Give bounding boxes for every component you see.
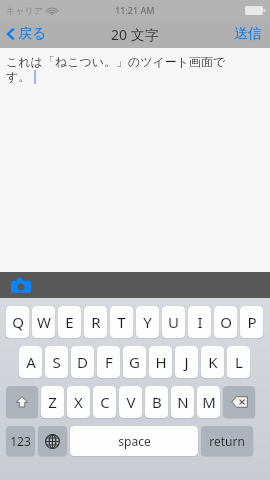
- button[interactable]: P: [240, 306, 263, 338]
- staticText: これは「ねこつい。」のツイート画面で: [6, 54, 226, 69]
- staticText: Y: [143, 312, 152, 332]
- button[interactable]: Shift: [6, 386, 38, 418]
- button[interactable]: F: [97, 346, 120, 378]
- button[interactable]: B: [145, 386, 168, 418]
- button[interactable]: 戻る: [0, 20, 55, 48]
- staticText: A: [26, 352, 36, 372]
- staticText: 送信: [234, 25, 262, 43]
- button[interactable]: R: [84, 306, 107, 338]
- button[interactable]: space: [70, 426, 198, 456]
- staticText: K: [208, 352, 218, 372]
- button[interactable]: M: [197, 386, 220, 418]
- button[interactable]: O: [214, 306, 237, 338]
- staticText: R: [91, 312, 101, 332]
- button[interactable]: L: [227, 346, 250, 378]
- staticText: X: [74, 392, 83, 412]
- staticText: S: [52, 352, 61, 372]
- button[interactable]: Camera: [8, 274, 34, 296]
- button[interactable]: T: [110, 306, 133, 338]
- staticText: P: [247, 312, 257, 332]
- button[interactable]: U: [162, 306, 185, 338]
- button[interactable]: Backspace: [223, 386, 255, 418]
- button[interactable]: I: [188, 306, 211, 338]
- staticText: キャリア: [6, 5, 43, 16]
- staticText: G: [129, 352, 140, 372]
- staticText: C: [100, 392, 110, 412]
- button[interactable]: V: [119, 386, 142, 418]
- staticText: H: [155, 352, 167, 372]
- staticText: F: [105, 352, 113, 372]
- staticText: す。: [6, 69, 31, 84]
- staticText: M: [202, 392, 216, 412]
- button[interactable]: H: [149, 346, 172, 378]
- button[interactable]: J: [175, 346, 198, 378]
- staticText: Z: [48, 392, 57, 412]
- staticText: 11:21 AM: [115, 4, 155, 16]
- button[interactable]: 送信: [226, 20, 270, 48]
- staticText: 戻る: [18, 25, 47, 43]
- button[interactable]: X: [67, 386, 90, 418]
- button[interactable]: return: [201, 426, 253, 456]
- staticText: U: [168, 312, 179, 332]
- staticText: J: [184, 352, 189, 372]
- staticText: Q: [12, 312, 24, 332]
- staticText: I: [197, 312, 203, 332]
- button[interactable]: Q: [6, 306, 29, 338]
- button[interactable]: Next keyboard: [38, 426, 67, 456]
- button[interactable]: S: [45, 346, 68, 378]
- staticText: N: [177, 392, 189, 412]
- button[interactable]: Y: [136, 306, 159, 338]
- button[interactable]: G: [123, 346, 146, 378]
- button[interactable]: E: [58, 306, 81, 338]
- button[interactable]: K: [201, 346, 224, 378]
- staticText: space: [118, 433, 151, 449]
- staticText: L: [235, 352, 243, 372]
- staticText: T: [117, 312, 126, 332]
- staticText: 20 文字: [111, 25, 159, 44]
- button[interactable]: D: [71, 346, 94, 378]
- staticText: return: [209, 433, 245, 449]
- button[interactable]: 123: [6, 426, 35, 456]
- button[interactable]: W: [32, 306, 55, 338]
- button[interactable]: N: [171, 386, 194, 418]
- staticText: V: [126, 392, 136, 412]
- staticText: D: [77, 352, 88, 372]
- button[interactable]: A: [19, 346, 42, 378]
- staticText: O: [220, 312, 232, 332]
- staticText: 123: [10, 433, 31, 449]
- staticText: B: [152, 392, 162, 412]
- button[interactable]: Z: [41, 386, 64, 418]
- staticText: W: [37, 312, 51, 332]
- staticText: E: [65, 312, 74, 332]
- button[interactable]: C: [93, 386, 116, 418]
